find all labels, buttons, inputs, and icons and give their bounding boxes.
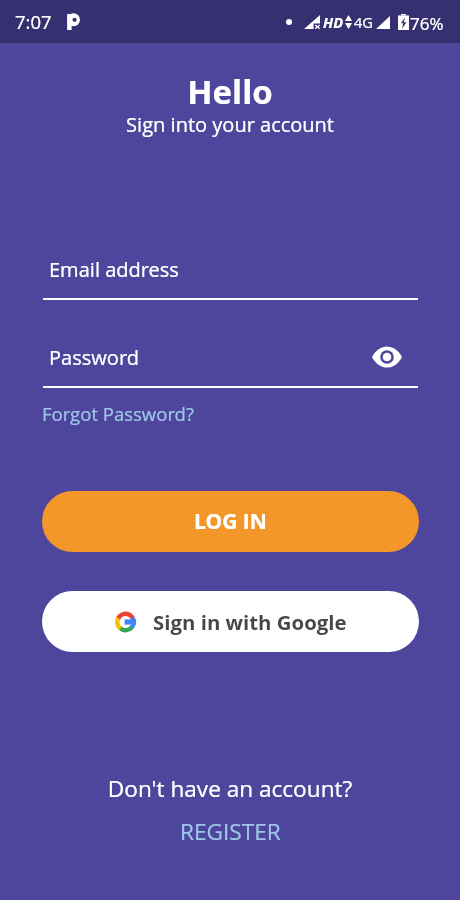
staticText: 4G (354, 13, 373, 33)
staticText: Password (49, 344, 139, 371)
button[interactable]: Sign in with Google (42, 591, 419, 652)
staticText: HD (323, 13, 343, 33)
button[interactable]: Show password (368, 338, 405, 375)
staticText: 76% (410, 12, 444, 35)
staticText: Don't have an account? (0, 773, 460, 804)
staticText: 7:07 (15, 9, 52, 34)
staticText: REGISTER (180, 816, 281, 847)
button[interactable]: Email address (43, 252, 418, 300)
button[interactable]: Forgot Password? (42, 398, 194, 429)
staticText: Hello (0, 69, 460, 114)
staticText: LOG IN (194, 507, 267, 536)
staticText: Sign into your account (0, 111, 460, 138)
button[interactable]: Password (43, 340, 418, 388)
button[interactable]: REGISTER (166, 813, 295, 850)
staticText: Forgot Password? (42, 401, 194, 426)
staticText: Sign in with Google (153, 608, 347, 636)
button[interactable]: LOG IN (42, 491, 419, 552)
staticText: Email address (49, 256, 179, 283)
